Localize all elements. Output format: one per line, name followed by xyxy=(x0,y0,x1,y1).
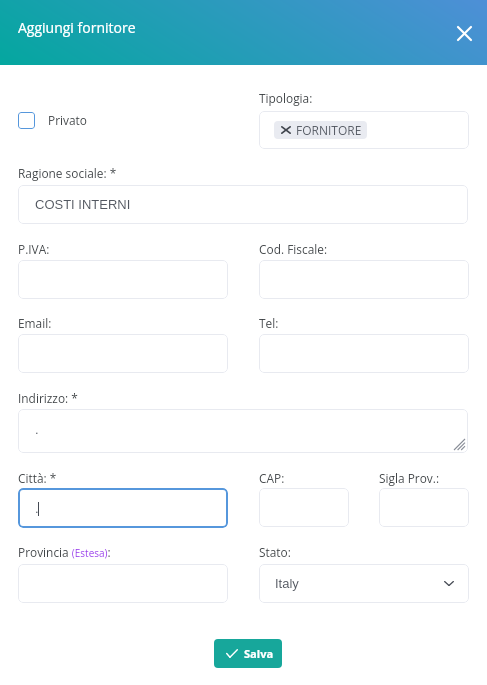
staticText: COSTI INTERNI xyxy=(35,197,131,212)
staticText: Città: * xyxy=(18,470,57,486)
button[interactable]: Salva xyxy=(214,639,282,668)
button[interactable] xyxy=(18,564,228,603)
button[interactable] xyxy=(259,334,469,373)
button[interactable]: FORNITORE xyxy=(259,111,469,149)
staticText: CAP: xyxy=(259,470,285,486)
button[interactable]: Privato xyxy=(18,111,87,130)
button[interactable]: Chiudi xyxy=(444,13,484,53)
staticText: Cod. Fiscale: xyxy=(259,241,328,257)
button[interactable]: COSTI INTERNI xyxy=(18,185,468,224)
staticText: Tipologia: xyxy=(259,90,313,106)
button[interactable] xyxy=(259,260,469,299)
staticText: Italy xyxy=(275,576,299,591)
staticText: Stato: xyxy=(259,544,291,560)
staticText: Salva xyxy=(244,646,274,661)
staticText: Indirizzo: * xyxy=(18,390,78,406)
button[interactable] xyxy=(259,488,349,527)
button[interactable] xyxy=(18,334,228,373)
button[interactable]: . xyxy=(18,488,228,528)
button[interactable]: Italy xyxy=(259,564,469,603)
staticText: Tel: xyxy=(259,315,279,331)
staticText: Aggiungi fornitore xyxy=(18,18,136,37)
button[interactable]: FORNITORE xyxy=(274,121,367,139)
staticText: Sigla Prov.: xyxy=(379,470,440,486)
staticText: . xyxy=(35,422,39,437)
button[interactable]: . xyxy=(18,409,468,453)
staticText: Ragione sociale: * xyxy=(18,165,117,181)
staticText: Privato xyxy=(48,112,87,128)
button[interactable] xyxy=(18,260,228,299)
staticText: P.IVA: xyxy=(18,241,50,257)
staticText: Email: xyxy=(18,315,52,331)
staticText: FORNITORE xyxy=(296,122,362,138)
staticText: Provincia (Estesa): xyxy=(18,544,111,560)
staticText: . xyxy=(35,501,39,516)
button[interactable] xyxy=(379,488,469,527)
